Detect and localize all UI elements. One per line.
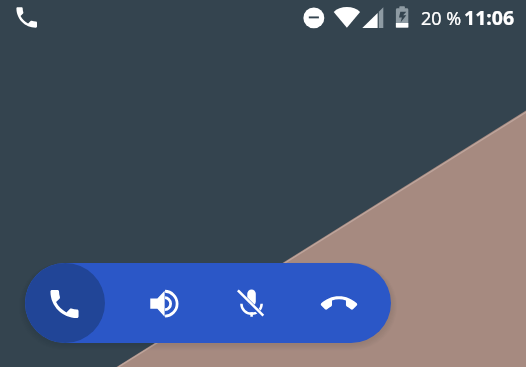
staticText: 20 % [421, 6, 462, 31]
staticText: 11:06 [464, 4, 515, 31]
button[interactable]: Mute microphone [216, 263, 286, 343]
button[interactable]: Call in progress [25, 263, 105, 343]
button[interactable]: End call [304, 263, 374, 343]
button[interactable]: Speaker [129, 263, 199, 343]
